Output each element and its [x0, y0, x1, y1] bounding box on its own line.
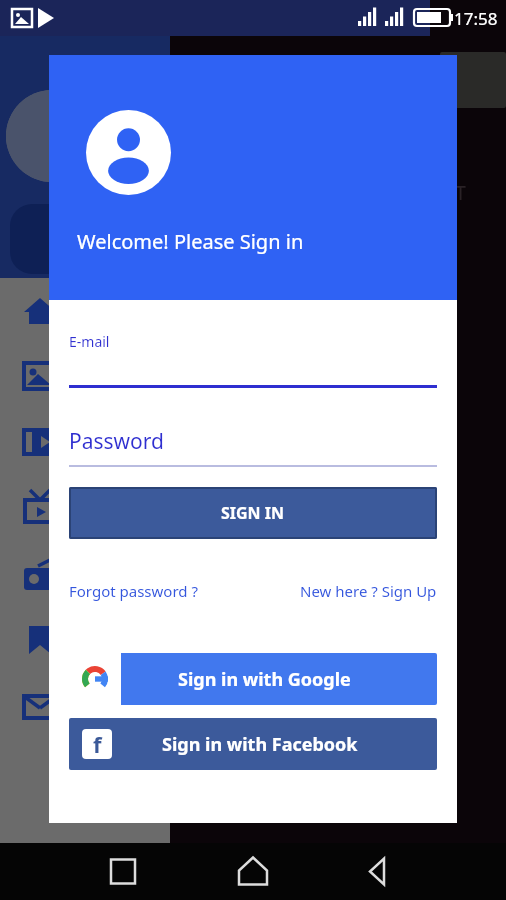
- staticText: Welcome! Please Sign in: [77, 228, 304, 255]
- button[interactable]: f: [69, 718, 437, 770]
- staticText: SIGN IN: [221, 502, 285, 524]
- staticText: Password: [69, 427, 164, 456]
- staticText: 17:58: [454, 7, 498, 30]
- staticText: Forgot password ?: [69, 581, 198, 601]
- button[interactable]: Forgot password ?: [69, 581, 198, 601]
- staticText: New here ? Sign Up: [300, 581, 437, 601]
- staticText: f: [93, 729, 102, 759]
- staticText: ENT: [430, 180, 467, 206]
- button[interactable]: New here ? Sign Up: [300, 581, 437, 601]
- staticText: Sign in with Google: [178, 667, 351, 692]
- button[interactable]: SIGN IN: [69, 487, 437, 539]
- staticText: Sign in with Facebook: [162, 732, 358, 757]
- staticText: E-mail: [69, 332, 110, 351]
- button[interactable]: Sign in with Google: [69, 653, 437, 705]
